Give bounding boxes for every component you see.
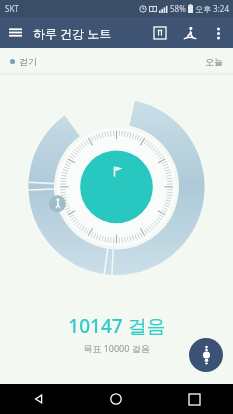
button[interactable]: Walk tracking	[175, 18, 205, 48]
staticText: 58%	[170, 3, 186, 14]
staticText: 오후 3:24	[195, 3, 229, 14]
button[interactable]: 오늘	[205, 56, 223, 67]
staticText: 하루 건강 노트	[33, 25, 112, 41]
staticText: 걷기	[19, 56, 37, 67]
staticText: 목표 10000 걸음	[83, 342, 150, 354]
button[interactable]: More options	[205, 20, 231, 46]
staticText: 오늘	[205, 56, 223, 67]
button[interactable]: Recent apps	[155, 384, 233, 414]
button[interactable]: Home	[77, 384, 155, 414]
staticText: SKT	[5, 3, 19, 14]
button[interactable]: Add entry	[189, 338, 223, 372]
button[interactable]: 걷기	[10, 56, 37, 67]
button[interactable]: Back	[0, 384, 77, 414]
button[interactable]: Calendar	[145, 18, 175, 48]
staticText: 10147 걸음	[68, 313, 166, 339]
button[interactable]: Menu	[0, 17, 31, 48]
